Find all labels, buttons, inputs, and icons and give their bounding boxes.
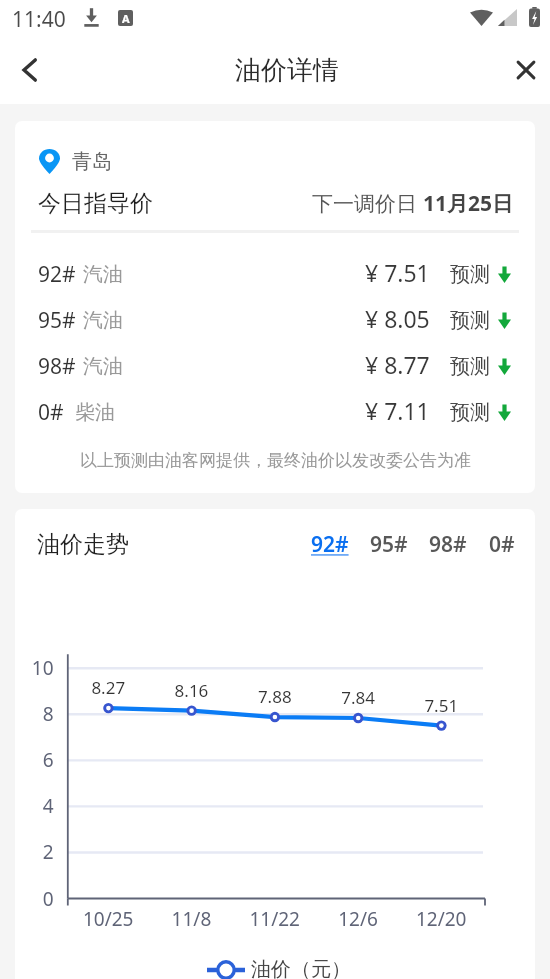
staticText: 预测	[450, 354, 490, 379]
staticText: 柴油	[75, 400, 115, 425]
button[interactable]: Back	[6, 46, 54, 94]
staticText: 预测	[450, 308, 490, 333]
button[interactable]: Close	[502, 46, 550, 94]
staticText: 油价走势	[37, 530, 129, 559]
staticText: 今日指导价	[38, 189, 153, 217]
button[interactable]: 0#	[489, 530, 515, 559]
staticText: 92#	[38, 260, 76, 289]
staticText: 95#	[370, 530, 408, 559]
staticText: ¥ 8.77	[365, 349, 430, 380]
button[interactable]: 95#	[370, 530, 408, 559]
staticText: 92#	[311, 530, 349, 559]
button[interactable]: 98#	[429, 530, 467, 559]
staticText: ¥ 8.05	[365, 303, 430, 334]
button[interactable]: 92#	[38, 251, 511, 297]
button[interactable]: 95#	[38, 297, 511, 343]
other: Download	[84, 7, 99, 27]
staticText: 青岛	[72, 149, 112, 174]
staticText: 0#	[489, 530, 515, 559]
staticText: 预测	[450, 400, 490, 425]
staticText: 11月25日	[423, 189, 514, 217]
staticText: 95#	[38, 306, 76, 335]
staticText: 汽油	[83, 308, 123, 333]
button[interactable]: 92#	[311, 530, 349, 559]
staticText: 下一调价日	[312, 189, 423, 217]
button[interactable]: 0#	[38, 389, 511, 435]
staticText: ¥ 7.51	[365, 257, 430, 288]
staticText: 98#	[429, 530, 467, 559]
staticText: 11:40	[12, 5, 66, 34]
button[interactable]: 98#	[38, 343, 511, 389]
staticText: 98#	[38, 352, 76, 381]
staticText: 预测	[450, 262, 490, 287]
staticText: 以上预测由油客网提供，最终油价以发改委公告为准	[80, 450, 471, 471]
staticText: 汽油	[83, 354, 123, 379]
staticText: 油价详情	[235, 54, 339, 87]
staticText: ¥ 7.11	[365, 395, 430, 426]
staticText: 0#	[38, 398, 64, 427]
staticText: A	[122, 11, 130, 26]
staticText: 汽油	[83, 262, 123, 287]
